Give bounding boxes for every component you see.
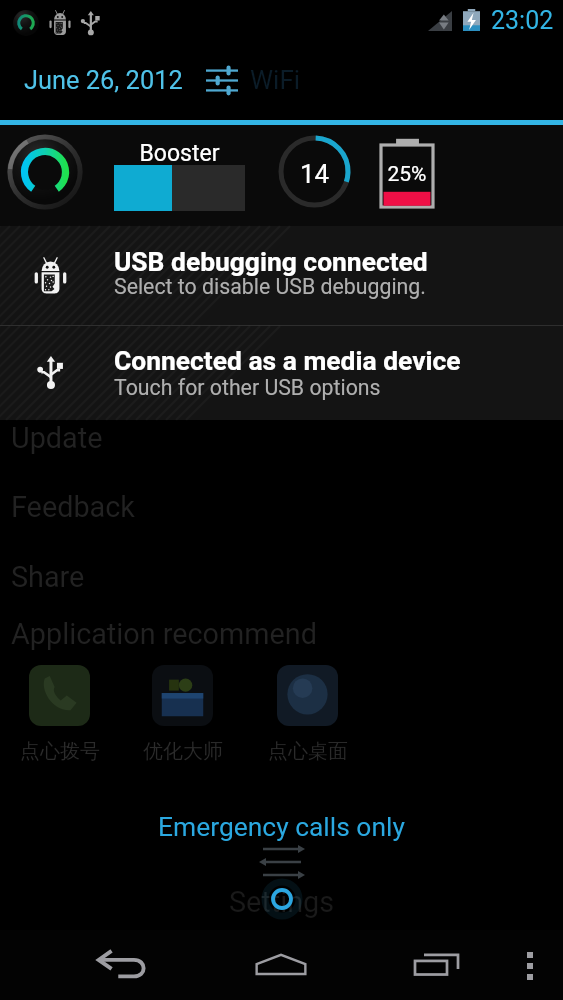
- staticText: 14: [300, 159, 330, 189]
- staticText: Application recommend: [11, 617, 317, 651]
- staticText: 点心桌面: [248, 739, 368, 764]
- button[interactable]: More options: [500, 930, 560, 1000]
- staticText: 25%: [381, 162, 433, 187]
- staticText: 点心拨号: [0, 739, 120, 764]
- staticText: Share: [11, 560, 85, 594]
- button[interactable]: Connected as a media device: [0, 326, 563, 420]
- button[interactable]: Recent apps: [383, 930, 491, 1000]
- button[interactable]: Back: [71, 930, 179, 1000]
- staticText: 优化大师: [123, 739, 243, 764]
- staticText: WiFi: [250, 65, 301, 95]
- staticText: Feedback: [11, 490, 135, 524]
- staticText: June 26, 2012: [24, 65, 183, 95]
- staticText: Update: [11, 421, 103, 455]
- staticText: Connected as a media device: [114, 346, 461, 377]
- staticText: Settings: [0, 885, 563, 919]
- button[interactable]: Drag handle: [0, 848, 563, 918]
- button[interactable]: USB debugging connected: [0, 226, 563, 325]
- button[interactable]: Home: [227, 930, 335, 1000]
- staticText: Select to disable USB debugging.: [114, 274, 426, 299]
- staticText: USB debugging connected: [114, 247, 428, 278]
- staticText: Touch for other USB options: [114, 375, 381, 400]
- button[interactable]: Quick settings: [204, 62, 240, 98]
- staticText: 23:02: [491, 6, 554, 35]
- staticText: Booster: [114, 140, 245, 167]
- staticText: Emergency calls only: [0, 812, 563, 843]
